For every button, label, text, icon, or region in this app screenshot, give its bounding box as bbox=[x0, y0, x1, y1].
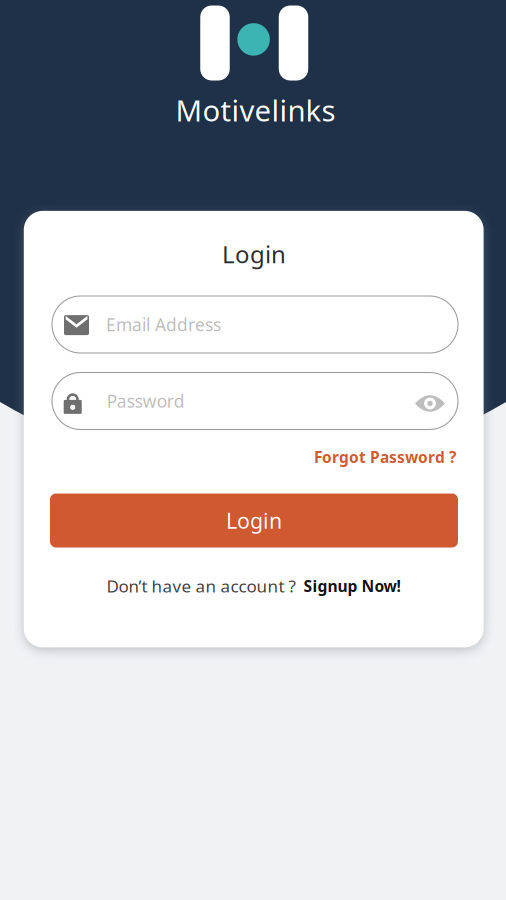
staticText: Motivelinks bbox=[175, 90, 335, 129]
staticText: Email Address bbox=[106, 313, 221, 336]
button[interactable]: Forgot Password ? bbox=[312, 441, 458, 473]
button[interactable]: Don’t have an account ? bbox=[106, 569, 400, 603]
staticText: Signup Now! bbox=[303, 575, 400, 597]
staticText bbox=[295, 574, 303, 598]
staticText: Password bbox=[107, 389, 185, 412]
staticText: Forgot Password ? bbox=[314, 446, 456, 468]
button[interactable]: Email Address bbox=[52, 296, 458, 353]
button[interactable]: Login bbox=[50, 493, 458, 547]
staticText: Don’t have an account ? bbox=[106, 574, 295, 598]
button[interactable]: Show password bbox=[407, 380, 453, 426]
staticText: Login bbox=[222, 238, 286, 270]
staticText: Login bbox=[226, 506, 282, 535]
button[interactable]: Password bbox=[52, 372, 458, 429]
